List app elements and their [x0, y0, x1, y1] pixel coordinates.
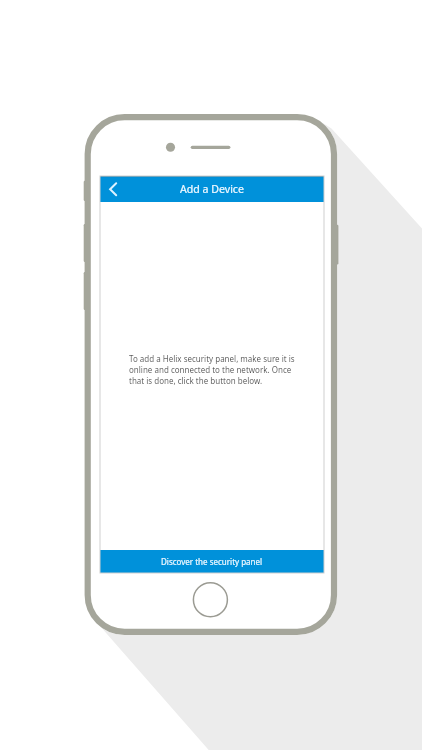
button[interactable]: Discover the security panel — [100, 550, 324, 573]
staticText: Discover the security panel — [161, 556, 263, 567]
button[interactable]: Back — [100, 176, 126, 202]
staticText: Add a Device — [180, 182, 244, 196]
staticText: To add a Helix security panel, make sure… — [129, 353, 297, 386]
